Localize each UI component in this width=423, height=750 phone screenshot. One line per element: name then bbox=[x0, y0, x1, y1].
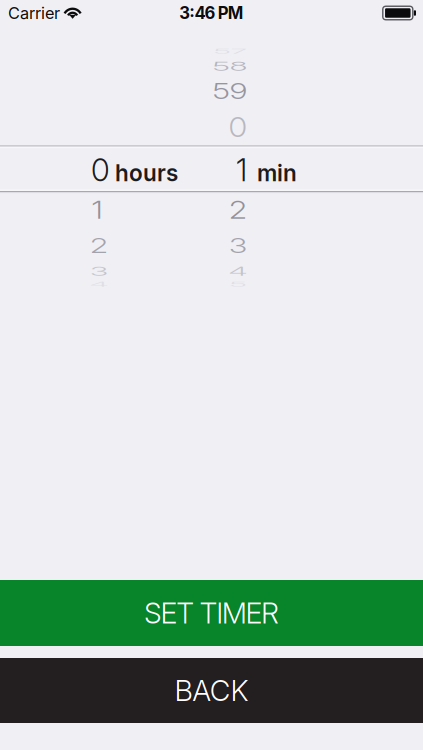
staticText: 5 bbox=[229, 265, 246, 302]
staticText: Carrier bbox=[8, 3, 60, 23]
staticText: 58 bbox=[212, 47, 247, 84]
staticText: SET TIMER bbox=[144, 596, 279, 630]
staticText: 1 bbox=[236, 151, 247, 188]
button[interactable]: SET TIMER bbox=[0, 580, 423, 646]
staticText: 57 bbox=[213, 32, 246, 69]
staticText: 3:46 PM bbox=[179, 3, 244, 23]
staticText: 1 bbox=[91, 191, 102, 228]
staticText: 4 bbox=[89, 265, 108, 302]
button[interactable]: BACK bbox=[0, 658, 423, 723]
staticText: 0 bbox=[228, 108, 247, 145]
staticText: 59 bbox=[212, 72, 247, 109]
staticText: hours bbox=[115, 159, 178, 187]
staticText: 2 bbox=[90, 227, 108, 264]
staticText: 4 bbox=[228, 252, 247, 289]
staticText: BACK bbox=[174, 673, 248, 708]
staticText: 3 bbox=[229, 227, 247, 264]
staticText: min bbox=[257, 159, 297, 187]
staticText: 3 bbox=[90, 252, 108, 289]
staticText: 0 bbox=[91, 151, 110, 188]
staticText: 2 bbox=[229, 191, 247, 228]
